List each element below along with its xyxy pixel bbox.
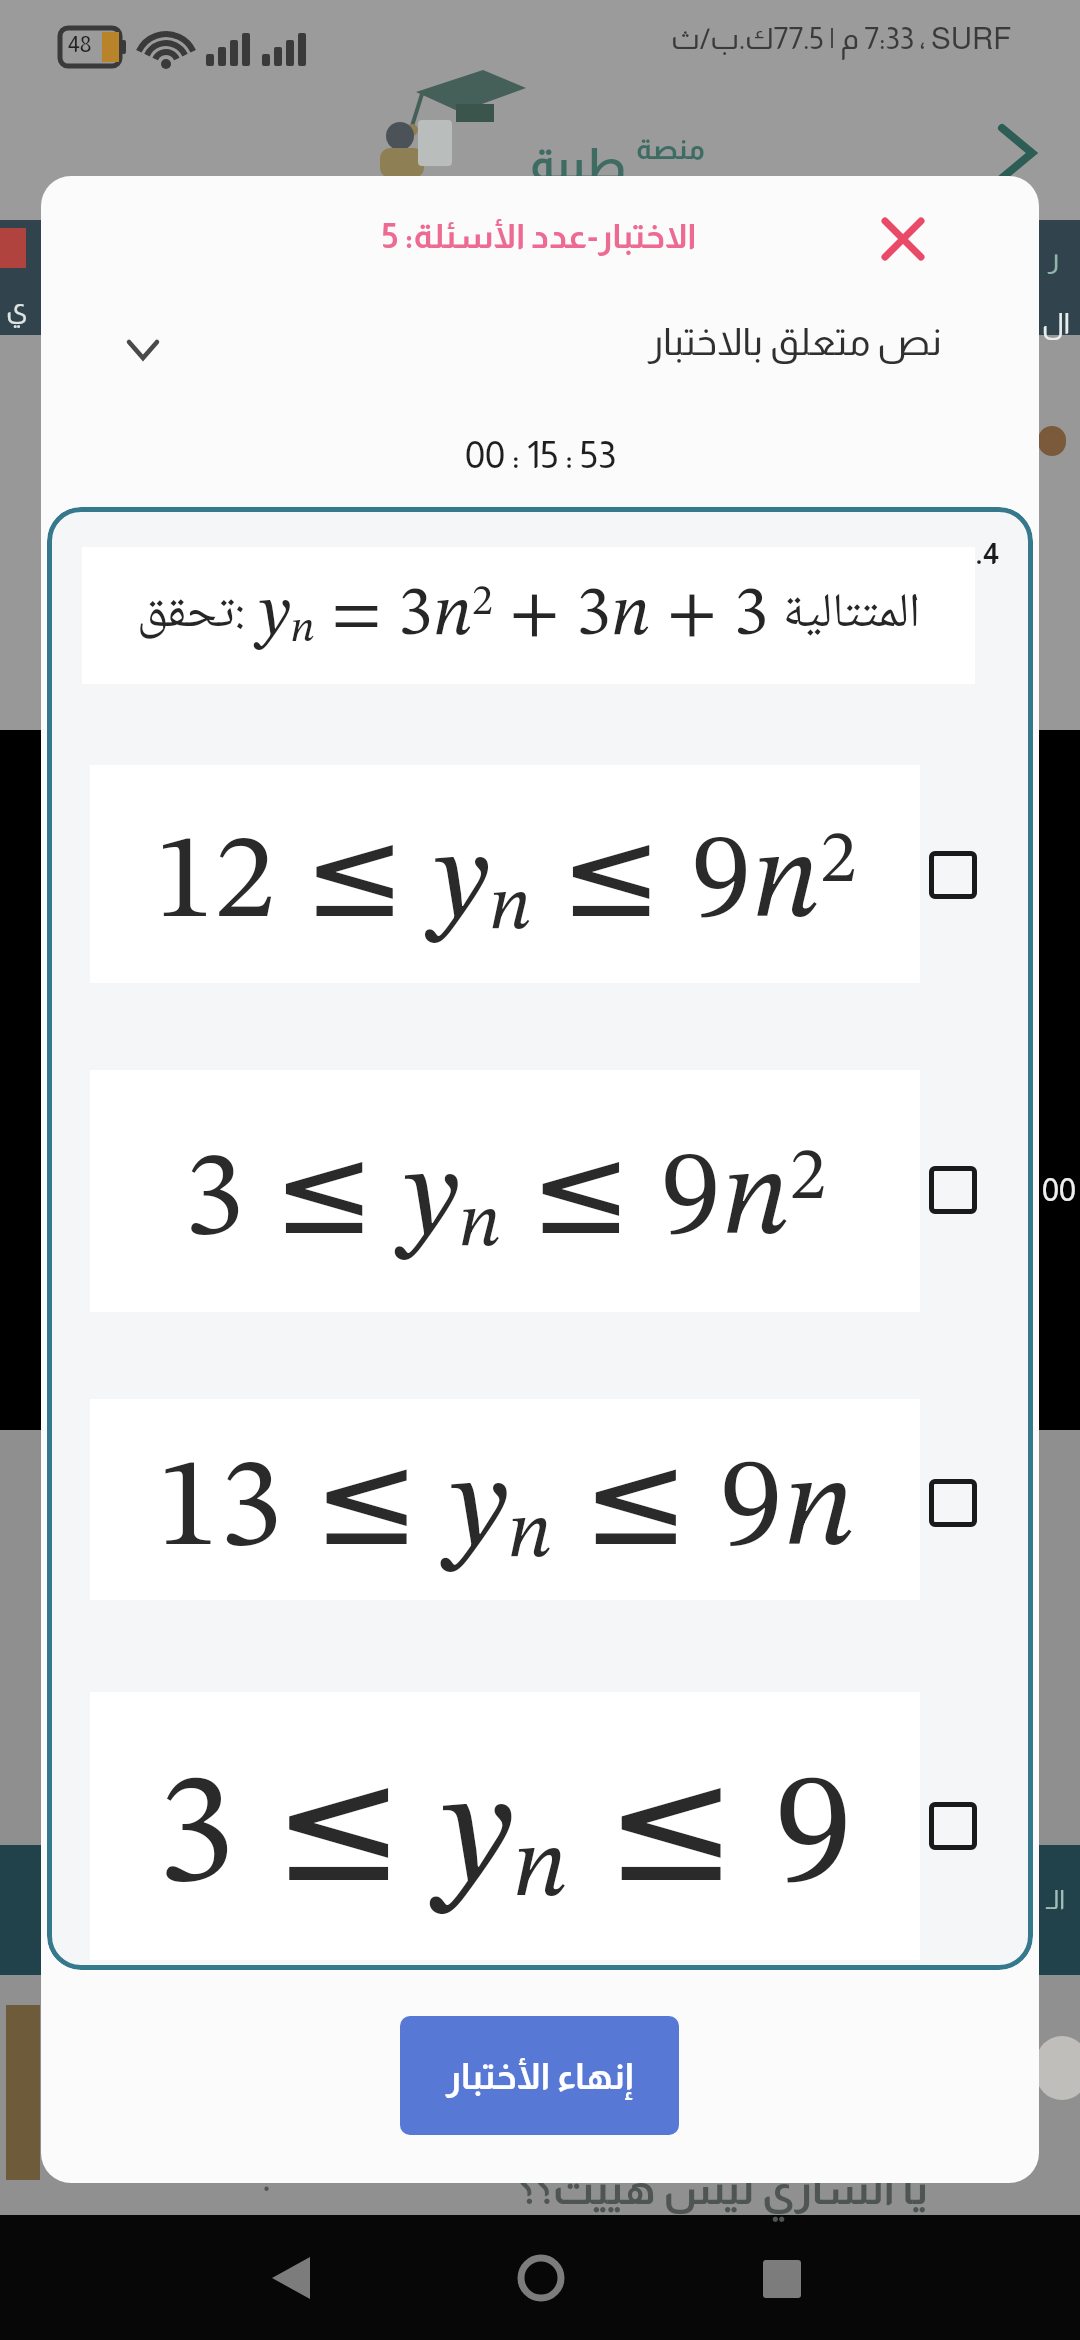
staticText: 13 ≤ yn ≤ 9n <box>156 1425 855 1575</box>
staticText: يا الساري ليس هييت؟؟ <box>518 2166 928 2213</box>
button[interactable]: 3 ≤ yn ≤ 9n2 <box>90 1070 920 1312</box>
staticText: نص متعلق بالاختبار <box>648 321 942 363</box>
button[interactable] <box>883 219 923 259</box>
button[interactable] <box>763 2260 801 2298</box>
staticText: منصة <box>636 134 705 165</box>
button[interactable] <box>272 2257 310 2299</box>
staticText: تحقق: <box>137 575 245 657</box>
staticText: 3 ≤ yn ≤ 9 <box>157 1733 853 1919</box>
staticText: إنهاء الأختبار <box>446 2056 634 2096</box>
staticText: 48 <box>68 32 92 57</box>
staticText: 12 ≤ yn ≤ 9n2 <box>154 803 857 946</box>
staticText: 00 : 15 : 53 <box>465 434 616 476</box>
staticText: . <box>262 2160 272 2198</box>
staticText: ر <box>1048 242 1060 273</box>
button[interactable] <box>998 126 1036 180</box>
button[interactable]: 3 ≤ yn ≤ 9 <box>90 1692 920 1960</box>
button[interactable]: نص متعلق بالاختبار <box>41 294 1039 390</box>
staticText: الـ <box>1046 1885 1066 1914</box>
button[interactable] <box>929 851 977 899</box>
staticText: المتتالية <box>783 575 921 657</box>
button[interactable]: 12 ≤ yn ≤ 9n2 <box>90 765 920 983</box>
button[interactable]: 13 ≤ yn ≤ 9n <box>90 1399 920 1600</box>
staticText: طيبة <box>530 140 626 189</box>
button[interactable] <box>929 1479 977 1527</box>
button[interactable]: إنهاء الأختبار <box>400 2016 679 2135</box>
staticText: ال <box>1042 308 1071 339</box>
staticText: 00 <box>1042 1172 1076 1208</box>
staticText: ي <box>6 292 28 323</box>
button[interactable] <box>929 1802 977 1850</box>
staticText: yn = 3n2 + 3n + 3 <box>259 581 769 652</box>
button[interactable] <box>517 2254 565 2302</box>
staticText: الاختبار-عدد الأسئلة: 5 <box>383 217 697 255</box>
staticText: ‭ث/ب.ك77.5 | م 7:33 ، SURF‬ <box>671 22 1012 55</box>
staticText: .4 <box>975 537 1000 570</box>
staticText: 3 ≤ yn ≤ 9n2 <box>184 1120 827 1263</box>
button[interactable] <box>929 1166 977 1214</box>
button[interactable] <box>127 340 159 360</box>
